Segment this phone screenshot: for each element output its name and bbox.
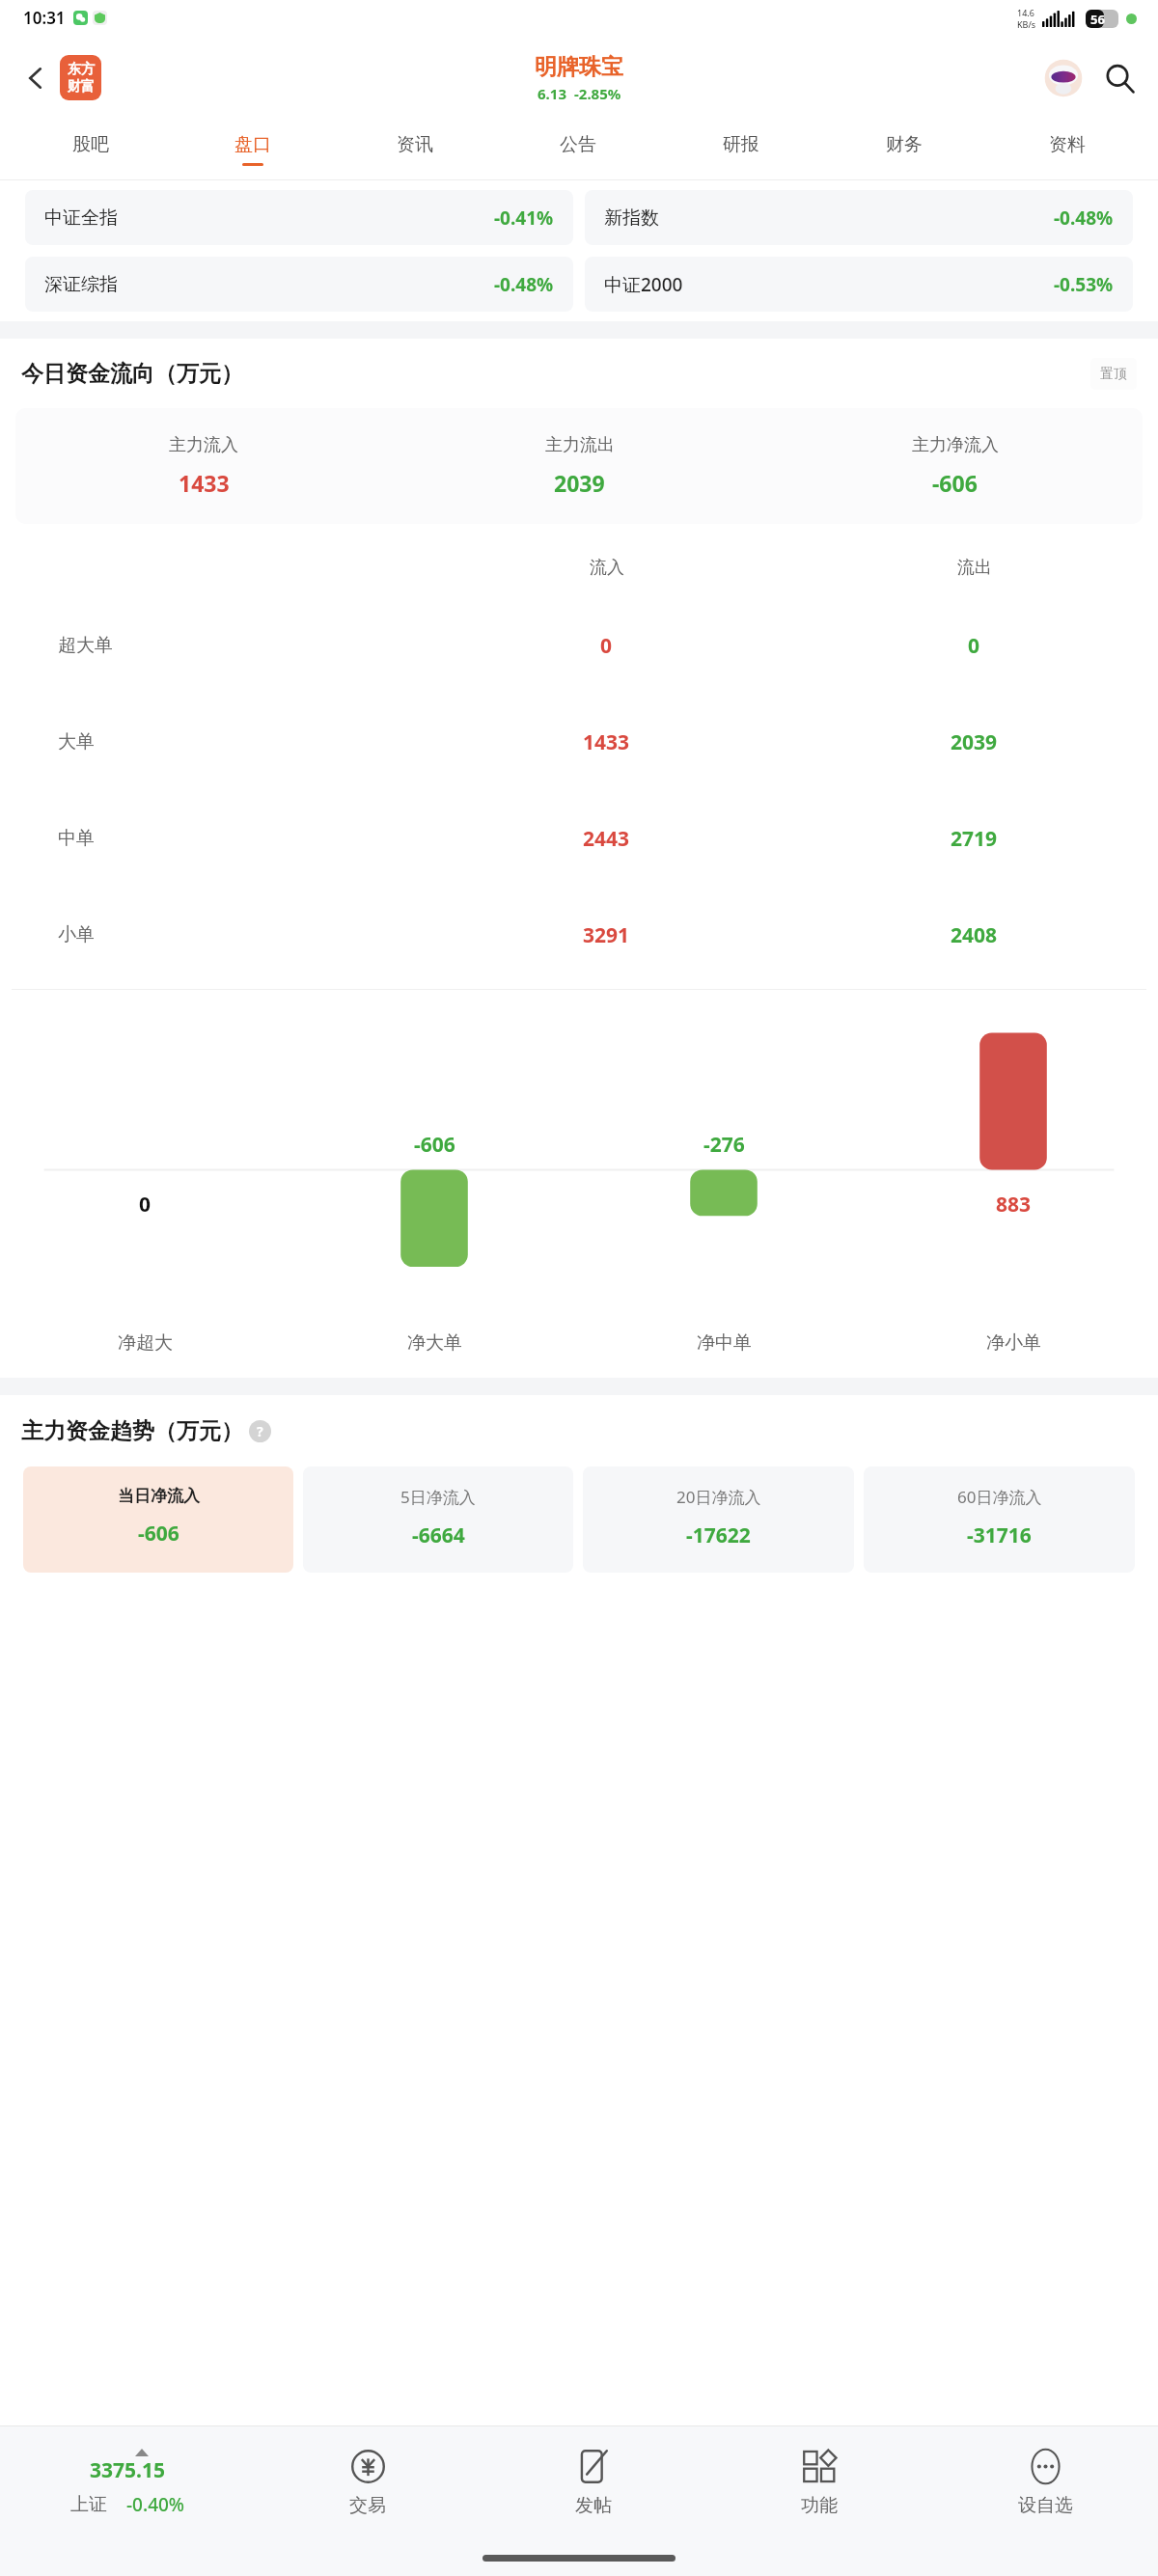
- staticText: 3291: [583, 921, 630, 949]
- staticText: 股吧: [72, 133, 109, 156]
- button[interactable]: 资讯: [334, 120, 496, 179]
- staticText: 2443: [583, 825, 630, 853]
- button[interactable]: 5日净流入: [303, 1466, 573, 1573]
- button[interactable]: Search: [1094, 53, 1144, 103]
- staticText: 小单: [58, 923, 95, 946]
- staticText: 14.6: [1017, 7, 1034, 18]
- staticText: -6664: [412, 1521, 465, 1549]
- staticText: 2408: [951, 921, 998, 949]
- staticText: 东方: [68, 61, 95, 78]
- staticText: 设自选: [1018, 2494, 1073, 2517]
- staticText: -606: [138, 1520, 179, 1548]
- staticText: 60日净流入: [957, 1486, 1042, 1508]
- staticText: 5日净流入: [400, 1486, 476, 1508]
- staticText: 公告: [560, 133, 596, 156]
- staticText: 主力流出: [545, 434, 615, 456]
- button[interactable]: 小单: [0, 887, 1158, 983]
- button[interactable]: 大单: [0, 694, 1158, 790]
- staticText: 明牌珠宝: [535, 53, 623, 81]
- staticText: -0.48%: [494, 272, 554, 297]
- staticText: 今日资金流向（万元）: [21, 360, 243, 388]
- staticText: 主力资金趋势（万元）: [21, 1417, 243, 1445]
- button[interactable]: 设自选: [932, 2426, 1158, 2539]
- staticText: 0: [968, 632, 980, 660]
- staticText: 深证综指: [44, 273, 118, 296]
- staticText: -0.53%: [1054, 272, 1114, 297]
- button[interactable]: 置顶: [1090, 358, 1137, 390]
- staticText: -606: [932, 468, 978, 498]
- staticText: 中证2000: [604, 272, 683, 297]
- button[interactable]: 3375.15: [0, 2426, 255, 2539]
- staticText: 2039: [951, 728, 998, 756]
- staticText: 2719: [951, 825, 998, 853]
- staticText: ?: [257, 1422, 263, 1440]
- staticText: 流入: [590, 557, 624, 579]
- button[interactable]: 中证2000: [585, 257, 1133, 312]
- button[interactable]: 研报: [659, 120, 822, 179]
- staticText: 当日净流入: [118, 1486, 200, 1506]
- button[interactable]: 发帖: [481, 2426, 706, 2539]
- staticText: 0: [600, 632, 613, 660]
- button[interactable]: 公告: [496, 120, 659, 179]
- button[interactable]: 东方: [60, 55, 101, 100]
- button[interactable]: AI assistant: [1040, 55, 1087, 101]
- button[interactable]: 财务: [822, 120, 985, 179]
- button[interactable]: Help: [249, 1420, 271, 1442]
- staticText: 功能: [801, 2494, 838, 2517]
- staticText: 883: [996, 1191, 1032, 1219]
- button[interactable]: 交易: [255, 2426, 481, 2539]
- staticText: 资讯: [397, 133, 433, 156]
- staticText: -31716: [967, 1521, 1032, 1549]
- staticText: 10:31: [23, 7, 66, 29]
- staticText: 中单: [58, 827, 95, 850]
- staticText: -2.85%: [574, 84, 621, 103]
- button[interactable]: 股吧: [10, 120, 172, 179]
- button[interactable]: 当日净流入: [23, 1466, 293, 1573]
- staticText: 3375.15: [90, 2456, 165, 2484]
- staticText: 大单: [58, 730, 95, 754]
- button[interactable]: 功能: [706, 2426, 932, 2539]
- staticText: 研报: [723, 133, 759, 156]
- staticText: 净小单: [986, 1331, 1041, 1355]
- staticText: 0: [139, 1191, 152, 1219]
- button[interactable]: 中单: [0, 790, 1158, 887]
- staticText: 56: [1090, 11, 1105, 28]
- staticText: 财务: [886, 133, 923, 156]
- staticText: 新指数: [604, 206, 659, 230]
- staticText: 置顶: [1100, 366, 1127, 383]
- button[interactable]: 超大单: [0, 597, 1158, 694]
- button[interactable]: 主力流入: [15, 408, 1143, 524]
- staticText: 资料: [1049, 133, 1086, 156]
- button[interactable]: 盘口: [172, 120, 334, 179]
- button[interactable]: 60日净流入: [864, 1466, 1135, 1573]
- button[interactable]: 深证综指: [25, 257, 573, 312]
- staticText: -606: [414, 1131, 455, 1159]
- staticText: 流出: [957, 557, 992, 579]
- button[interactable]: 中证全指: [25, 190, 573, 245]
- staticText: 1433: [179, 468, 230, 498]
- staticText: 盘口: [234, 133, 271, 156]
- staticText: 2039: [554, 468, 605, 498]
- button[interactable]: 20日净流入: [583, 1466, 854, 1573]
- staticText: 主力流入: [169, 434, 238, 456]
- staticText: 交易: [349, 2494, 386, 2517]
- staticText: 净大单: [407, 1331, 462, 1355]
- button[interactable]: Back: [14, 56, 58, 100]
- staticText: 净中单: [697, 1331, 752, 1355]
- staticText: -276: [703, 1131, 745, 1159]
- staticText: 上证: [70, 2493, 107, 2516]
- staticText: 6.13: [538, 84, 566, 103]
- staticText: KB/s: [1017, 18, 1036, 30]
- staticText: 净超大: [118, 1331, 173, 1355]
- staticText: 主力净流入: [912, 434, 999, 456]
- staticText: 20日净流入: [676, 1486, 761, 1508]
- button[interactable]: 资料: [985, 120, 1148, 179]
- staticText: -17622: [686, 1521, 751, 1549]
- staticText: 发帖: [575, 2494, 612, 2517]
- button[interactable]: 新指数: [585, 190, 1133, 245]
- staticText: -0.48%: [1054, 206, 1114, 231]
- staticText: -0.40%: [126, 2492, 185, 2517]
- staticText: 财富: [68, 78, 95, 96]
- staticText: 中证全指: [44, 206, 118, 230]
- staticText: 1433: [583, 728, 630, 756]
